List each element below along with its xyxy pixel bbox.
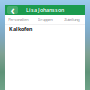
button[interactable]: Gruppen xyxy=(32,17,58,22)
staticText: ‹ xyxy=(10,2,14,18)
staticText: Lisa Johansson xyxy=(26,6,64,14)
button[interactable]: Zuteilung xyxy=(58,17,85,22)
staticText: Personalien xyxy=(8,17,28,22)
button[interactable]: Back xyxy=(7,6,18,14)
staticText: Kalkofen xyxy=(9,25,32,33)
button[interactable]: Personalien xyxy=(5,17,32,22)
staticText: Zuteilung xyxy=(64,17,79,22)
staticText: Gruppen xyxy=(37,17,52,22)
